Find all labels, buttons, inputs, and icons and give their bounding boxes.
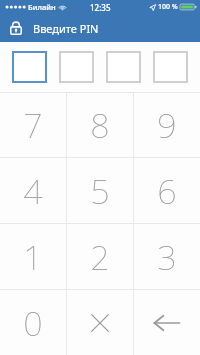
staticText: 7 xyxy=(23,102,43,148)
button[interactable]: 8 xyxy=(67,92,133,157)
staticText: 12:35 xyxy=(90,2,111,13)
button[interactable]: Backspace xyxy=(134,290,200,355)
staticText: 8 xyxy=(90,102,110,148)
staticText: 4 xyxy=(23,168,43,214)
staticText: 1 xyxy=(23,234,43,280)
button[interactable]: PIN digit 2 xyxy=(59,51,94,83)
staticText: 9 xyxy=(157,102,177,148)
button[interactable]: 1 xyxy=(0,224,66,289)
staticText: 0 xyxy=(23,300,43,346)
staticText: 100 % xyxy=(158,2,178,12)
button[interactable]: 9 xyxy=(134,92,200,157)
button[interactable]: PIN digit 4 xyxy=(153,51,188,83)
staticText: 6 xyxy=(157,168,177,214)
button[interactable]: PIN digit 1 xyxy=(12,51,47,83)
staticText: Введите PIN xyxy=(33,21,99,36)
button[interactable]: 7 xyxy=(0,92,66,157)
staticText: 5 xyxy=(90,168,110,214)
button[interactable]: 4 xyxy=(0,158,66,223)
staticText: Билайн xyxy=(28,2,56,12)
button[interactable]: 5 xyxy=(67,158,133,223)
staticText: 2 xyxy=(90,234,110,280)
staticText: 3 xyxy=(157,234,177,280)
button[interactable]: 2 xyxy=(67,224,133,289)
button[interactable]: PIN digit 3 xyxy=(106,51,141,83)
button[interactable]: 3 xyxy=(134,224,200,289)
button[interactable]: 6 xyxy=(134,158,200,223)
button[interactable]: Clear xyxy=(67,290,133,355)
button[interactable]: 0 xyxy=(0,290,66,355)
button[interactable]: Lock xyxy=(7,19,25,37)
